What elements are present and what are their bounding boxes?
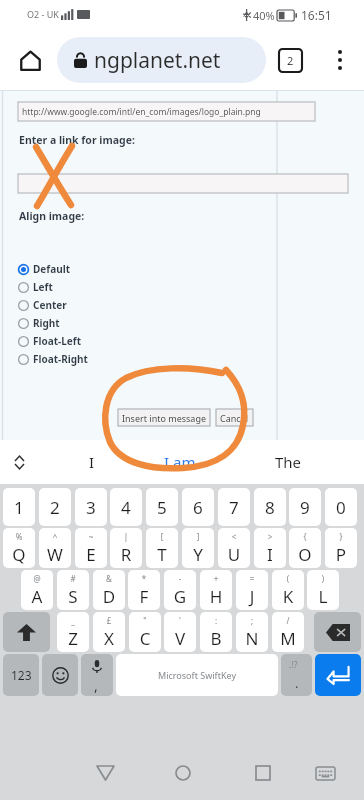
button[interactable]: 2: [39, 488, 71, 526]
staticText: ^: [39, 531, 71, 542]
button[interactable]: Voice input and comma: [81, 654, 113, 696]
staticText: 4: [121, 496, 131, 519]
staticText: #: [57, 573, 89, 584]
staticText: 6: [193, 496, 203, 519]
staticText: O: [289, 543, 321, 566]
button[interactable]: =: [236, 570, 268, 610]
button[interactable]: Enter: [315, 654, 361, 696]
button[interactable]: 5: [146, 488, 178, 526]
button[interactable]: 0: [325, 488, 357, 526]
button[interactable]: I: [62, 440, 122, 484]
staticText: |: [110, 531, 142, 542]
button[interactable]: Float-Left: [18, 332, 82, 350]
button[interactable]: <: [218, 528, 250, 568]
button[interactable]: [18, 174, 348, 193]
staticText: Enter a link for image:: [19, 133, 135, 147]
staticText: G: [164, 585, 196, 608]
button[interactable]: 123: [3, 654, 39, 696]
button[interactable]: >: [254, 528, 286, 568]
button[interactable]: Shift: [3, 612, 50, 652]
staticText: Align image:: [19, 209, 85, 223]
button[interactable]: Punctuation and period: [281, 654, 312, 696]
button[interactable]: ]: [182, 528, 214, 568]
staticText: ,: [94, 676, 98, 695]
button[interactable]: 7: [218, 488, 250, 526]
staticText: Z: [57, 627, 89, 650]
button[interactable]: Recent apps: [248, 758, 278, 788]
staticText: Float-Right: [33, 352, 88, 366]
staticText: 0: [336, 496, 346, 519]
staticText: ): [307, 573, 339, 584]
button[interactable]: ): [307, 570, 339, 610]
button[interactable]: ^: [39, 528, 71, 568]
button[interactable]: 8: [254, 488, 286, 526]
staticText: I: [89, 452, 95, 472]
button[interactable]: %: [3, 528, 35, 568]
button[interactable]: /: [272, 612, 304, 652]
staticText: 123: [11, 667, 32, 683]
button[interactable]: 6: [182, 488, 214, 526]
button[interactable]: Emoji: [42, 654, 78, 696]
button[interactable]: Switch keyboard: [310, 758, 340, 788]
button[interactable]: (: [272, 570, 304, 610]
staticText: {: [289, 531, 321, 542]
button[interactable]: +: [200, 570, 232, 610]
button[interactable]: 3: [75, 488, 107, 526]
staticText: 2: [50, 496, 60, 519]
button[interactable]: 1: [3, 488, 35, 526]
button[interactable]: ngplanet.net: [57, 37, 266, 83]
button[interactable]: http://www.google.com/intl/en_com/images…: [18, 102, 315, 121]
staticText: ': [164, 615, 196, 626]
button[interactable]: Default: [18, 260, 70, 278]
staticText: A: [21, 585, 53, 608]
staticText: 5: [157, 496, 167, 519]
staticText: W: [39, 543, 71, 566]
staticText: T: [146, 543, 178, 566]
button[interactable]: 9: [289, 488, 321, 526]
button[interactable]: :: [200, 612, 232, 652]
button[interactable]: Left: [18, 278, 53, 296]
button[interactable]: 4: [110, 488, 142, 526]
button[interactable]: Back: [90, 758, 120, 788]
button[interactable]: Tabs, 2 open: [279, 49, 302, 72]
button[interactable]: I am: [140, 440, 220, 484]
button[interactable]: Cancel: [216, 409, 253, 426]
button[interactable]: Expand suggestions: [11, 454, 27, 470]
staticText: M: [272, 627, 304, 650]
staticText: I: [254, 543, 286, 566]
button[interactable]: {: [289, 528, 321, 568]
button[interactable]: £: [93, 612, 125, 652]
staticText: http://www.google.com/intl/en_com/images…: [22, 106, 261, 118]
button[interactable]: Home: [15, 45, 45, 75]
staticText: E: [75, 543, 107, 566]
button[interactable]: -: [164, 570, 196, 610]
button[interactable]: Backspace: [314, 612, 361, 652]
button[interactable]: @: [21, 570, 53, 610]
button[interactable]: #: [57, 570, 89, 610]
staticText: ]: [182, 531, 214, 542]
button[interactable]: [: [146, 528, 178, 568]
button[interactable]: *: [128, 570, 160, 610]
button[interactable]: Space: [116, 654, 278, 696]
button[interactable]: Home: [168, 758, 198, 788]
button[interactable]: _: [57, 612, 89, 652]
staticText: D: [93, 585, 125, 608]
button[interactable]: Right: [18, 314, 60, 332]
staticText: N: [236, 627, 268, 650]
button[interactable]: |: [110, 528, 142, 568]
button[interactable]: More options: [327, 47, 353, 73]
button[interactable]: ": [129, 612, 161, 652]
button[interactable]: ': [164, 612, 196, 652]
staticText: Cancel: [220, 412, 249, 424]
staticText: 3: [86, 496, 96, 519]
staticText: -: [164, 573, 196, 584]
button[interactable]: Center: [18, 296, 67, 314]
button[interactable]: Insert into message: [118, 409, 210, 426]
button[interactable]: The: [248, 440, 328, 484]
staticText: O2 - UK: [27, 8, 59, 20]
button[interactable]: ~: [75, 528, 107, 568]
button[interactable]: ;: [236, 612, 268, 652]
button[interactable]: &: [93, 570, 125, 610]
button[interactable]: }: [325, 528, 357, 568]
button[interactable]: Float-Right: [18, 350, 88, 368]
